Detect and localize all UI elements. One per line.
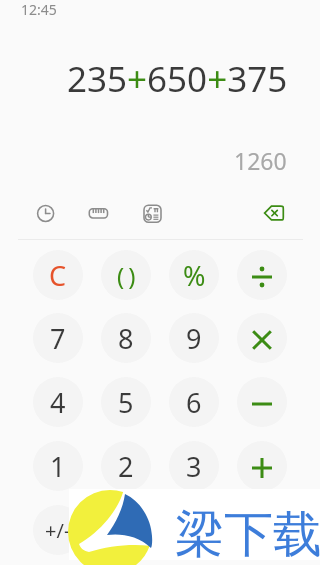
button[interactable]: Equals bbox=[237, 505, 287, 555]
staticText: 8 bbox=[118, 320, 134, 357]
button[interactable]: 3 bbox=[169, 441, 219, 491]
button[interactable]: 0 bbox=[101, 505, 151, 555]
staticText: 5 bbox=[118, 384, 134, 421]
button[interactable]: . bbox=[169, 505, 219, 555]
staticText: % bbox=[183, 257, 206, 294]
staticText: 1 bbox=[50, 448, 66, 485]
staticText: +/- bbox=[45, 517, 71, 544]
button[interactable]: Plus bbox=[237, 441, 287, 491]
button[interactable]: Multiply bbox=[237, 313, 287, 363]
button[interactable]: 4 bbox=[33, 377, 83, 427]
button[interactable]: Minus bbox=[237, 377, 287, 427]
button[interactable]: 5 bbox=[101, 377, 151, 427]
staticText: C bbox=[49, 257, 67, 294]
button[interactable]: 1 bbox=[33, 441, 83, 491]
button[interactable]: % bbox=[169, 250, 219, 300]
button[interactable]: Divide bbox=[237, 250, 287, 300]
staticText: 2 bbox=[118, 448, 134, 485]
staticText: ( ) bbox=[117, 259, 136, 292]
staticText: 6 bbox=[186, 384, 202, 421]
staticText: . bbox=[190, 512, 198, 549]
button[interactable]: 9 bbox=[169, 313, 219, 363]
staticText: 3 bbox=[186, 448, 202, 485]
button[interactable]: +/- bbox=[33, 505, 83, 555]
staticText: 235+650+375 bbox=[67, 55, 288, 103]
button[interactable]: C bbox=[33, 250, 83, 300]
button[interactable]: 6 bbox=[169, 377, 219, 427]
button[interactable]: 8 bbox=[101, 313, 151, 363]
button[interactable]: History bbox=[33, 201, 58, 226]
button[interactable]: 2 bbox=[101, 441, 151, 491]
button[interactable]: Scientific calculator bbox=[140, 201, 165, 226]
button[interactable]: Unit converter bbox=[86, 201, 111, 226]
staticText: 12:45 bbox=[21, 0, 57, 19]
staticText: 9 bbox=[186, 320, 202, 357]
staticText: 1260 bbox=[234, 145, 287, 176]
button[interactable]: Backspace bbox=[261, 201, 286, 226]
staticText: 7 bbox=[50, 320, 66, 357]
staticText: 4 bbox=[50, 384, 66, 421]
staticText: 0 bbox=[118, 512, 134, 549]
button[interactable]: ( ) bbox=[101, 250, 151, 300]
staticText: 梁下载 bbox=[175, 504, 320, 565]
button[interactable]: 7 bbox=[33, 313, 83, 363]
